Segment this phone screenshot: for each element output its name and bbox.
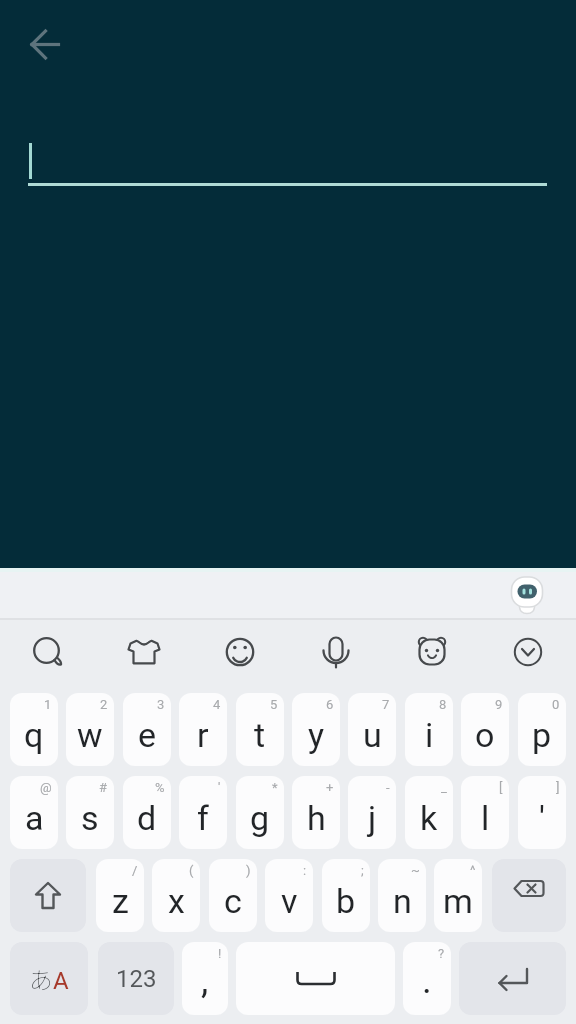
staticText: : [303, 863, 307, 878]
button[interactable]: q [10, 693, 58, 766]
staticText: * [272, 780, 278, 795]
button[interactable]: k [405, 776, 453, 849]
button[interactable]: h [292, 776, 340, 849]
staticText: y [308, 715, 325, 755]
button[interactable]: b [322, 859, 370, 932]
staticText: 6 [326, 697, 334, 712]
button[interactable]: w [66, 693, 114, 766]
button[interactable]: t [236, 693, 284, 766]
staticText: ] [556, 780, 560, 795]
staticText: ) [246, 863, 251, 878]
staticText: 3 [157, 697, 165, 712]
button[interactable]: j [348, 776, 396, 849]
button[interactable]: f [179, 776, 227, 849]
staticText: ' [539, 798, 545, 838]
staticText: c [224, 881, 242, 921]
staticText: i [425, 715, 434, 755]
staticText: 0 [552, 697, 560, 712]
button[interactable]: z [96, 859, 144, 932]
button[interactable] [480, 620, 576, 686]
staticText: % [155, 780, 165, 795]
staticText: p [532, 715, 552, 755]
staticText: 7 [382, 697, 390, 712]
staticText: ? [438, 946, 445, 961]
button[interactable]: v [265, 859, 313, 932]
staticText: ; [361, 863, 364, 878]
staticText: 5 [270, 697, 278, 712]
staticText: , [201, 959, 209, 1002]
staticText: ^ [470, 863, 476, 878]
button[interactable] [508, 573, 546, 617]
staticText: u [363, 715, 382, 755]
button[interactable]: g [236, 776, 284, 849]
staticText: 123 [116, 965, 157, 993]
button[interactable] [384, 620, 480, 686]
staticText: n [393, 881, 412, 921]
staticText: ' [218, 780, 221, 795]
staticText: ! [218, 946, 222, 961]
button[interactable]: l [461, 776, 509, 849]
staticText: a [25, 798, 44, 838]
staticText: 1 [44, 697, 52, 712]
staticText: ~ [411, 863, 420, 878]
button[interactable] [10, 859, 86, 932]
staticText: t [254, 715, 266, 755]
button[interactable]: p [518, 693, 566, 766]
button[interactable]: u [348, 693, 396, 766]
staticText: o [475, 715, 495, 755]
staticText: # [99, 780, 108, 795]
button[interactable] [18, 17, 72, 71]
staticText: q [24, 715, 44, 755]
staticText: 8 [439, 697, 447, 712]
button[interactable]: , [182, 942, 228, 1015]
button[interactable]: d [123, 776, 171, 849]
button[interactable]: x [152, 859, 200, 932]
staticText: + [326, 780, 334, 795]
staticText: 2 [100, 697, 108, 712]
staticText: x [168, 881, 185, 921]
button[interactable] [459, 942, 566, 1015]
staticText: w [77, 715, 103, 755]
staticText: [ [499, 780, 503, 795]
button[interactable]: r [179, 693, 227, 766]
button[interactable]: あA [10, 942, 88, 1015]
staticText: @ [40, 780, 52, 795]
button[interactable]: . [403, 942, 451, 1015]
staticText: - [386, 780, 390, 795]
staticText: f [197, 798, 209, 838]
staticText: 9 [495, 697, 503, 712]
staticText: s [81, 798, 99, 838]
staticText: g [250, 798, 270, 838]
button[interactable]: 123 [98, 942, 174, 1015]
button[interactable]: a [10, 776, 58, 849]
button[interactable] [0, 620, 96, 686]
button[interactable] [192, 620, 288, 686]
staticText: 4 [213, 697, 221, 712]
button[interactable]: y [292, 693, 340, 766]
button[interactable]: s [66, 776, 114, 849]
button[interactable]: c [209, 859, 257, 932]
staticText: m [443, 881, 473, 921]
button[interactable]: ' [518, 776, 566, 849]
staticText: r [197, 715, 209, 755]
button[interactable]: o [461, 693, 509, 766]
button[interactable] [492, 859, 566, 932]
button[interactable] [288, 620, 384, 686]
staticText: あA [29, 961, 69, 996]
staticText: h [307, 798, 326, 838]
button[interactable] [96, 620, 192, 686]
staticText: e [138, 715, 157, 755]
button[interactable]: m [434, 859, 482, 932]
staticText: ( [189, 863, 194, 878]
staticText: / [132, 863, 138, 878]
button[interactable] [236, 942, 395, 1015]
button[interactable]: i [405, 693, 453, 766]
staticText: _ [441, 780, 447, 795]
staticText: . [422, 959, 432, 1002]
staticText: l [481, 798, 490, 838]
staticText: k [420, 798, 438, 838]
staticText: d [137, 798, 157, 838]
button[interactable]: e [123, 693, 171, 766]
button[interactable]: n [378, 859, 426, 932]
staticText: j [368, 798, 377, 838]
